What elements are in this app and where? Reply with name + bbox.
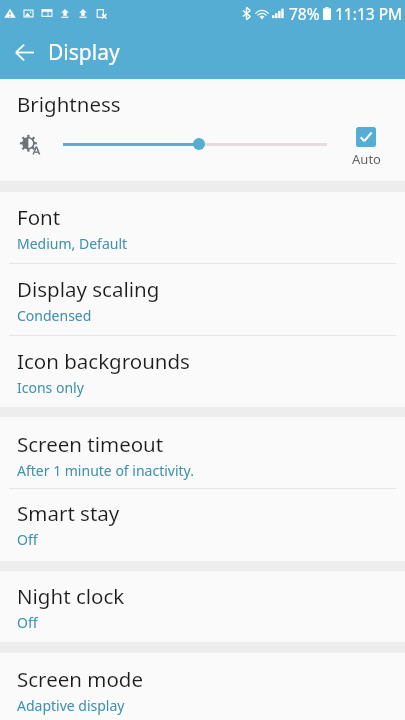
staticText: Smart stay: [17, 499, 120, 527]
button[interactable]: Icon backgrounds: [0, 336, 405, 407]
staticText: 11:13 PM: [335, 3, 403, 24]
button[interactable]: Font: [0, 192, 405, 264]
staticText: Auto: [352, 150, 381, 168]
button[interactable]: Smart stay: [0, 489, 405, 561]
button[interactable]: Night clock: [0, 571, 405, 642]
staticText: Icons only: [17, 378, 84, 397]
staticText: Night clock: [17, 582, 125, 610]
staticText: Condensed: [17, 306, 92, 325]
button[interactable]: Screen mode: [0, 653, 405, 720]
staticText: Screen mode: [17, 665, 144, 693]
staticText: After 1 minute of inactivity.: [17, 461, 194, 480]
staticText: Display: [48, 38, 120, 67]
staticText: Screen timeout: [17, 430, 164, 458]
button[interactable]: Auto: [347, 127, 385, 168]
staticText: Font: [17, 203, 61, 231]
staticText: Medium, Default: [17, 234, 128, 253]
button[interactable]: Navigate up: [0, 26, 48, 79]
staticText: Display scaling: [17, 275, 160, 303]
staticText: 78%: [289, 3, 320, 24]
staticText: Adaptive display: [17, 696, 125, 715]
staticText: Off: [17, 530, 38, 549]
button[interactable]: Display scaling: [0, 264, 405, 336]
staticText: Icon backgrounds: [17, 347, 190, 375]
staticText: Off: [17, 613, 38, 632]
staticText: Brightness: [17, 90, 121, 118]
button[interactable]: Brightness level: [57, 124, 333, 164]
button[interactable]: Automatic brightness: [10, 124, 50, 164]
button[interactable]: Screen timeout: [0, 417, 405, 489]
